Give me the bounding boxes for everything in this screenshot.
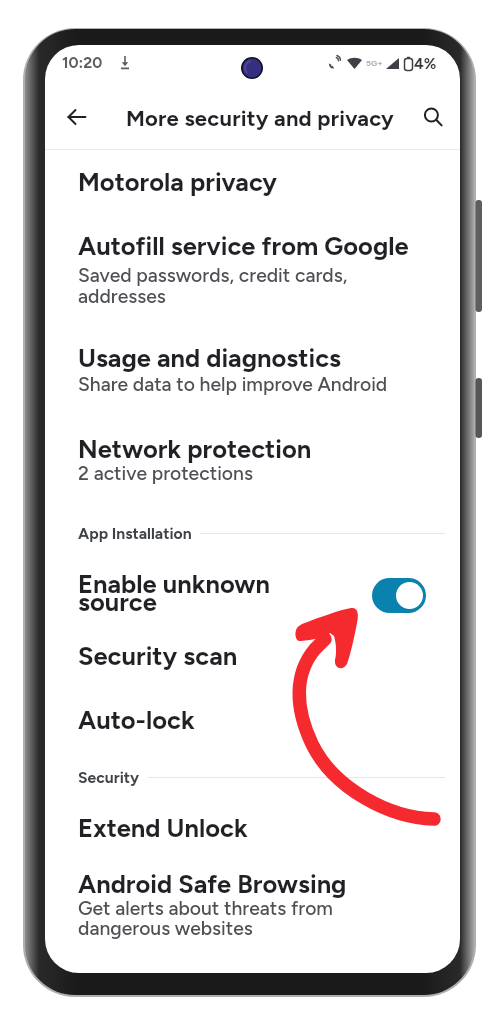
staticText: 10:20 <box>62 53 103 72</box>
staticText: Security scan <box>78 641 238 672</box>
staticText: App Installation <box>78 524 192 543</box>
staticText: Auto-lock <box>78 705 195 736</box>
staticText: Share data to help improve Android <box>78 373 388 396</box>
staticText: 5G+ <box>366 58 383 68</box>
staticText: Get alerts about threats from <box>78 897 333 920</box>
button[interactable]: Search <box>414 98 452 136</box>
button[interactable] <box>45 156 460 208</box>
staticText: Security <box>78 768 140 787</box>
button[interactable] <box>45 425 460 495</box>
staticText: Extend Unlock <box>78 813 248 844</box>
staticText: 4% <box>414 54 437 73</box>
staticText: Motorola privacy <box>78 167 278 198</box>
staticText: dangerous websites <box>78 917 253 940</box>
staticText: Android Safe Browsing <box>78 869 347 900</box>
staticText: Network protection <box>78 434 312 465</box>
staticText: 2 active protections <box>78 462 253 485</box>
button[interactable] <box>45 695 460 747</box>
staticText: Enable unknown <box>78 569 270 600</box>
button[interactable] <box>45 860 460 952</box>
staticText: Autofill service from Google <box>78 231 409 262</box>
button[interactable] <box>45 802 460 854</box>
button[interactable] <box>45 335 460 405</box>
staticText: Saved passwords, credit cards, <box>78 264 348 287</box>
button[interactable] <box>45 223 460 315</box>
button[interactable]: Enable unknown source toggle <box>372 578 426 613</box>
button[interactable] <box>45 557 460 631</box>
staticText: More security and privacy <box>126 105 394 131</box>
staticText: addresses <box>78 285 166 308</box>
button[interactable]: Back <box>58 98 96 136</box>
staticText: Usage and diagnostics <box>78 343 341 374</box>
staticText: source <box>78 587 157 618</box>
button[interactable] <box>45 631 460 683</box>
